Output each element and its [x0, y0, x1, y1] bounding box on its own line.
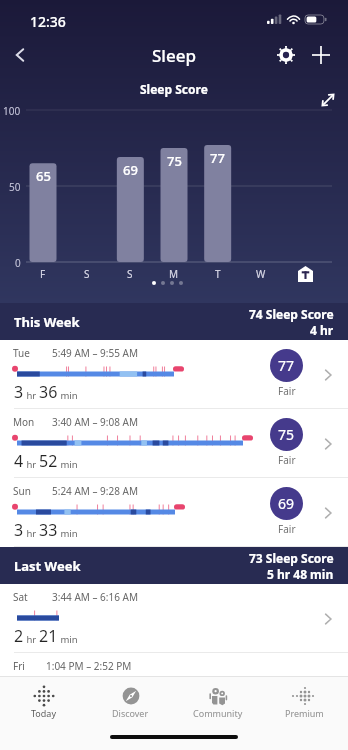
staticText: 3 [14, 381, 24, 403]
staticText: 75 [278, 425, 295, 444]
staticText: 73 Sleep Score [249, 550, 334, 566]
staticText: 74 Sleep Score [249, 306, 334, 322]
button[interactable]: Expand chart [316, 88, 340, 112]
button[interactable]: Mon [0, 409, 348, 478]
staticText: S [84, 267, 90, 281]
staticText: 2 [14, 625, 24, 647]
staticText: 4 [14, 450, 24, 472]
button[interactable]: Discover [87, 678, 174, 726]
staticText: min [58, 458, 78, 471]
staticText: min [58, 633, 78, 646]
button[interactable]: Today [0, 678, 87, 726]
staticText: M [169, 267, 179, 281]
staticText: 5:49 AM – 9:55 AM [52, 346, 138, 360]
staticText: 100 [3, 104, 21, 118]
staticText: Last Week [14, 557, 81, 575]
staticText: hr [24, 458, 39, 471]
staticText: 50 [9, 180, 21, 194]
staticText: 5:24 AM – 9:28 AM [52, 484, 138, 498]
staticText: T [215, 267, 221, 281]
button[interactable]: Sun [0, 478, 348, 547]
staticText: 1:04 PM – 2:52 PM [46, 659, 132, 673]
staticText: 5 hr 48 min [267, 566, 334, 582]
staticText: 77 [210, 149, 225, 167]
staticText: 75 [167, 152, 182, 170]
staticText: This Week [14, 313, 80, 331]
staticText: 69 [123, 161, 138, 179]
staticText: Fair [278, 384, 296, 398]
staticText: 4 hr [310, 322, 334, 338]
button[interactable]: Community [174, 678, 261, 726]
staticText: min [58, 527, 78, 540]
staticText: 33 [39, 519, 58, 541]
button[interactable]: Add [301, 35, 341, 75]
staticText: W [256, 267, 266, 281]
staticText: 0 [15, 256, 21, 270]
button[interactable]: Tue [0, 340, 348, 409]
button[interactable]: Sat [0, 584, 348, 653]
staticText: 3:44 AM – 6:16 AM [52, 590, 138, 604]
staticText: Sun [13, 484, 31, 498]
staticText: hr [24, 389, 39, 402]
staticText: 69 [278, 494, 295, 513]
staticText: 65 [36, 167, 51, 185]
staticText: 3 [14, 519, 24, 541]
staticText: hr [24, 633, 39, 646]
staticText: Fri [13, 659, 25, 673]
staticText: 77 [278, 356, 295, 375]
staticText: 36 [39, 381, 58, 403]
staticText: Discover [112, 707, 149, 719]
staticText: 12:36 [30, 12, 66, 31]
staticText: Tue [13, 346, 30, 360]
staticText: S [127, 267, 133, 281]
staticText: F [40, 267, 46, 281]
staticText: Sat [13, 590, 28, 604]
staticText: Fair [278, 522, 296, 536]
button[interactable]: Settings [266, 35, 306, 75]
staticText: Mon [13, 415, 35, 429]
staticText: 3:40 AM – 9:08 AM [52, 415, 138, 429]
button[interactable]: Premium [261, 678, 348, 726]
staticText: min [58, 389, 78, 402]
staticText: Today [31, 707, 56, 719]
staticText: Community [193, 707, 243, 719]
staticText: Fair [278, 453, 296, 467]
staticText: 52 [39, 450, 58, 472]
staticText: hr [24, 527, 39, 540]
staticText: 21 [39, 625, 58, 647]
staticText: Sleep Score [140, 81, 208, 97]
staticText: Premium [285, 707, 324, 719]
button[interactable]: Fri [0, 653, 348, 678]
button[interactable]: Back [0, 35, 40, 75]
staticText: Sleep [152, 44, 196, 67]
